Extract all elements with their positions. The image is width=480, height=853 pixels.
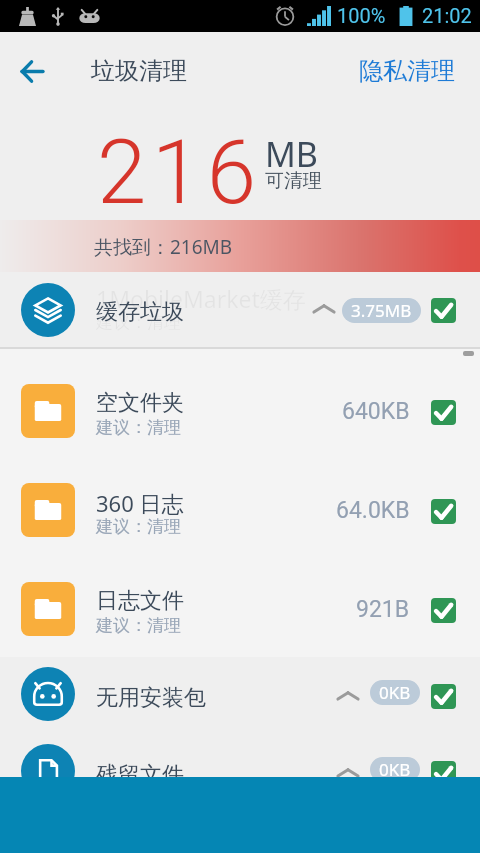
staticText: 建议：清理 [96, 312, 181, 333]
staticText: 日志文件 [96, 587, 184, 615]
staticText: 建议：清理 [96, 417, 181, 438]
button[interactable]: Selected [431, 298, 456, 323]
button[interactable]: 无用安装包 [0, 658, 480, 735]
button[interactable]: Selected [431, 761, 456, 786]
button[interactable]: Selected [431, 684, 456, 709]
staticText: 21:02 [422, 4, 472, 27]
staticText: 0KB [379, 681, 411, 704]
staticText: 建议：清理 [96, 516, 181, 537]
staticText: 640KB [342, 398, 410, 425]
staticText: MB [265, 131, 318, 177]
button[interactable]: Selected [431, 400, 456, 425]
staticText: 360 日志 [96, 488, 184, 518]
staticText: 64.0KB [336, 497, 410, 524]
button[interactable]: Selected [431, 499, 456, 524]
staticText: 无用安装包 [96, 684, 206, 712]
staticText: 可清理 [265, 169, 322, 193]
staticText: 1MobileMarket缓存 [96, 283, 306, 314]
staticText: 0KB [379, 758, 411, 781]
staticText: 216 [97, 120, 262, 224]
staticText: 隐私清理 [359, 56, 455, 86]
button[interactable]: 360 日志 [0, 488, 480, 587]
staticText: 100% [337, 4, 386, 27]
button[interactable]: 残留文件 [0, 735, 480, 812]
staticText: 缓存垃圾 [96, 298, 184, 326]
button[interactable]: 日志文件 [0, 587, 480, 686]
button[interactable]: Selected [431, 598, 456, 623]
staticText: 3.75MB [351, 299, 412, 322]
staticText: 共找到：216MB [94, 234, 233, 260]
staticText: 残留文件 [96, 761, 184, 789]
button[interactable]: 空文件夹 [0, 389, 480, 488]
staticText: 垃圾清理 [91, 56, 187, 86]
staticText: 空文件夹 [96, 389, 184, 417]
button[interactable]: 隐私清理 [341, 37, 480, 95]
staticText: 921B [356, 596, 410, 623]
staticText: 建议：清理 [96, 615, 181, 636]
button[interactable]: 1MobileMarket缓存 [0, 272, 480, 348]
button[interactable]: Back [4, 43, 60, 99]
